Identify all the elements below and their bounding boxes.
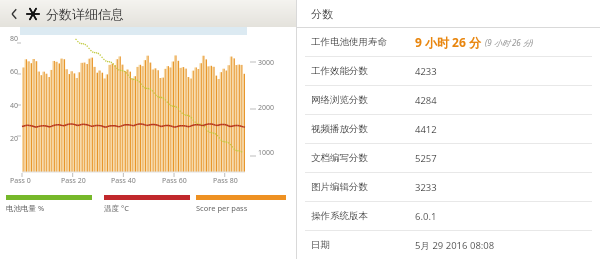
- staticText: Pass 20: [61, 176, 86, 186]
- staticText: Score per pass: [196, 203, 248, 213]
- staticText: 文档编写分数: [311, 152, 368, 164]
- staticText: 20: [2, 134, 18, 144]
- button[interactable]: 文档编写分数: [297, 144, 600, 172]
- staticText: Pass 80: [213, 176, 238, 186]
- button[interactable]: App icon: [24, 5, 42, 23]
- staticText: 温度 °C: [104, 203, 129, 213]
- staticText: 5257: [415, 152, 437, 165]
- staticText: 分数: [311, 7, 333, 21]
- staticText: 视频播放分数: [311, 123, 368, 135]
- button[interactable]: 工作效能分数: [297, 57, 600, 85]
- button[interactable]: 图片编辑分数: [297, 173, 600, 201]
- staticText: 3233: [415, 181, 437, 194]
- staticText: 4412: [415, 123, 437, 136]
- staticText: 80: [2, 34, 18, 44]
- button[interactable]: 网络浏览分数: [297, 86, 600, 114]
- button[interactable]: Score per pass: [196, 195, 286, 213]
- staticText: Pass 0: [10, 176, 31, 186]
- staticText: (9 小时 26 分): [485, 37, 534, 48]
- button[interactable]: 日期: [297, 231, 600, 259]
- staticText: 2000: [258, 103, 275, 113]
- staticText: 1000: [258, 148, 275, 158]
- staticText: 电池电量 %: [6, 203, 45, 213]
- staticText: 图片编辑分数: [311, 181, 368, 193]
- staticText: 9 小时 26 分: [415, 34, 481, 50]
- staticText: 日期: [311, 239, 330, 251]
- staticText: Pass 60: [162, 176, 187, 186]
- staticText: 工作效能分数: [311, 65, 368, 77]
- staticText: 网络浏览分数: [311, 94, 368, 106]
- button[interactable]: 温度 °C: [104, 195, 190, 213]
- button[interactable]: Back: [4, 4, 24, 24]
- staticText: 分数详细信息: [46, 6, 124, 22]
- button[interactable]: 工作电池使用寿命: [297, 28, 600, 56]
- button[interactable]: 电池电量 %: [6, 195, 92, 213]
- staticText: Pass 40: [111, 176, 136, 186]
- button[interactable]: 视频播放分数: [297, 115, 600, 143]
- staticText: 操作系统版本: [311, 210, 368, 222]
- staticText: 5月 29 2016 08:08: [415, 239, 495, 252]
- button[interactable]: 操作系统版本: [297, 202, 600, 230]
- staticText: 60: [2, 67, 18, 77]
- staticText: 工作电池使用寿命: [311, 36, 387, 48]
- staticText: 6.0.1: [415, 210, 437, 223]
- staticText: 3000: [258, 58, 275, 68]
- staticText: 4284: [415, 94, 437, 107]
- staticText: 40: [2, 101, 18, 111]
- staticText: 4233: [415, 65, 437, 78]
